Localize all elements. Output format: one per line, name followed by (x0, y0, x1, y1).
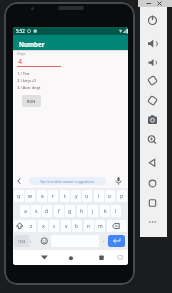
staticText: f (58, 208, 60, 215)
staticText: t (64, 193, 66, 200)
staticText: n (87, 223, 91, 230)
staticText: l (115, 208, 117, 215)
staticText: c (53, 223, 56, 230)
button[interactable]: ?123 (14, 235, 29, 247)
button[interactable]: Tap to enable contact suggestions (29, 177, 106, 185)
staticText: 4 (18, 56, 23, 66)
staticText: o (108, 193, 112, 200)
staticText: Days (17, 51, 26, 56)
button[interactable]: f (54, 205, 64, 217)
button[interactable]: z (26, 220, 36, 232)
button[interactable]: n (84, 220, 94, 232)
staticText: m (98, 223, 103, 230)
staticText: x (42, 223, 45, 230)
staticText: ?123 (18, 239, 26, 243)
button[interactable]: s (31, 205, 41, 217)
button[interactable]: l (111, 205, 121, 217)
button[interactable]: m (95, 220, 105, 232)
staticText: p (120, 193, 124, 200)
button[interactable]: y (71, 190, 81, 202)
button[interactable] (38, 235, 50, 247)
button[interactable] (108, 235, 125, 247)
staticText: w (28, 193, 32, 200)
button[interactable]: o (105, 190, 115, 202)
button[interactable]: g (65, 205, 75, 217)
staticText: i (98, 193, 100, 200)
staticText: RUN (27, 99, 36, 104)
staticText: u (85, 193, 89, 200)
button[interactable]: h (77, 205, 87, 217)
button[interactable]: b (72, 220, 82, 232)
button[interactable]: c (49, 220, 59, 232)
staticText: h (80, 208, 84, 215)
button[interactable]: x (38, 220, 48, 232)
button[interactable]: a (20, 205, 30, 217)
staticText: Number (19, 40, 45, 48)
staticText: 3.) Acai degt (17, 85, 41, 91)
button[interactable]: j (88, 205, 98, 217)
staticText: g (68, 208, 72, 215)
button[interactable] (107, 220, 127, 232)
staticText: y (75, 193, 78, 200)
staticText: z (30, 223, 33, 230)
button[interactable]: t (60, 190, 70, 202)
staticText: b (75, 223, 79, 230)
button[interactable]: v (61, 220, 71, 232)
staticText: d (45, 208, 49, 215)
staticText: s (35, 208, 38, 215)
button[interactable]: q (14, 190, 24, 202)
staticText: . (103, 236, 105, 243)
button[interactable]: u (82, 190, 92, 202)
button[interactable] (14, 220, 26, 232)
button[interactable]: i (94, 190, 104, 202)
button[interactable]: w (25, 190, 35, 202)
staticText: k (104, 208, 107, 215)
button[interactable]: p (117, 190, 127, 202)
staticText: j (92, 208, 94, 215)
staticText: Tap to enable contact suggestions (40, 179, 95, 184)
staticText: 1.) Tea (17, 71, 30, 77)
staticText: e (41, 193, 44, 200)
staticText: 2.) keys+0 (17, 78, 36, 84)
staticText: a (24, 208, 27, 215)
button[interactable]: RUN (22, 95, 41, 107)
button[interactable]: e (37, 190, 47, 202)
button[interactable]: k (100, 205, 110, 217)
staticText: , (30, 236, 32, 243)
staticText: 5:52 (16, 28, 25, 34)
button[interactable]: r (48, 190, 58, 202)
button[interactable]: d (42, 205, 52, 217)
staticText: v (65, 223, 68, 230)
staticText: q (17, 193, 21, 200)
staticText: r (52, 193, 55, 200)
